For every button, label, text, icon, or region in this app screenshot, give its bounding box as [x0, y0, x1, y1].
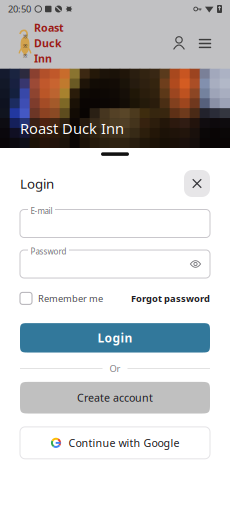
staticText: ※	[23, 33, 27, 40]
staticText: Login	[20, 175, 54, 192]
staticText: Inn	[34, 51, 52, 65]
button[interactable]: Forgot password	[131, 292, 210, 304]
staticText: Roast Duck Inn	[20, 118, 124, 138]
staticText: Remember me	[38, 292, 103, 305]
staticText: 20:50	[8, 3, 31, 15]
staticText: Or	[109, 362, 120, 375]
staticText: Duck	[34, 36, 62, 50]
staticText: Forgot password	[131, 292, 210, 305]
button[interactable]: Close	[184, 170, 210, 197]
staticText: Create account	[77, 391, 153, 405]
button[interactable]: Create account	[20, 382, 210, 413]
button[interactable]: Login	[20, 323, 210, 352]
staticText: ※	[23, 52, 27, 59]
staticText: Continue with Google	[68, 436, 179, 450]
button[interactable]: Menu	[192, 28, 218, 58]
staticText: E-mail	[30, 205, 52, 216]
staticText: Roast	[34, 21, 64, 35]
staticText: Password	[30, 246, 66, 257]
button[interactable]: Continue with Google	[20, 427, 210, 459]
button[interactable]: Remember me	[20, 292, 103, 304]
button[interactable]: Account	[166, 28, 192, 58]
staticText: Login	[97, 330, 132, 346]
staticText: ※	[23, 42, 27, 50]
